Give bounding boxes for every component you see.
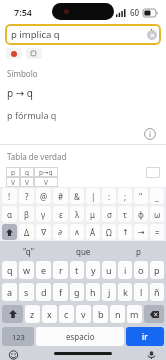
button[interactable]: d [36, 283, 51, 301]
button[interactable]: γ [36, 206, 51, 222]
staticText: _ [155, 191, 159, 202]
staticText: ! [8, 191, 11, 202]
button[interactable]: ∂ [53, 224, 68, 240]
staticText: ε [59, 209, 63, 220]
button[interactable]: a [2, 283, 17, 301]
button[interactable]: Otra fuente [26, 48, 42, 59]
staticText: ir [142, 331, 148, 342]
staticText: = [155, 227, 160, 238]
button[interactable]: ↑ [118, 224, 132, 240]
staticText: p → q [7, 86, 33, 100]
button[interactable]: σ [102, 206, 116, 222]
button[interactable]: t [70, 261, 84, 279]
button[interactable]: & [70, 188, 84, 204]
staticText: & [74, 191, 80, 202]
staticText: u [106, 264, 112, 276]
button[interactable]: u [102, 261, 116, 279]
button[interactable]: → [134, 224, 148, 240]
staticText: ñ [154, 286, 160, 298]
button[interactable]: k [118, 283, 132, 301]
button[interactable]: v [76, 305, 91, 323]
button[interactable]: s [19, 283, 34, 301]
button[interactable]: Dictado por voz [145, 350, 158, 360]
button[interactable]: h [86, 283, 100, 301]
button[interactable]: q [2, 261, 17, 279]
button[interactable]: j [102, 283, 116, 301]
button[interactable]: "q" [0, 243, 56, 259]
button[interactable]: Borrar [144, 305, 164, 323]
button[interactable]: β [19, 206, 34, 222]
button[interactable]: f [53, 283, 68, 301]
button[interactable]: ? [19, 188, 34, 204]
staticText: q [7, 264, 13, 276]
button[interactable]: que [56, 243, 111, 259]
button[interactable]: 123 [2, 327, 34, 346]
button[interactable]: Ω [102, 224, 116, 240]
button[interactable]: espacio [36, 327, 124, 346]
button[interactable]: = [150, 224, 164, 240]
button[interactable]: e [36, 261, 51, 279]
staticText: @ [40, 191, 48, 202]
button[interactable]: o [134, 261, 148, 279]
button[interactable]: ω [150, 206, 164, 222]
button[interactable]: p fórmula q [0, 108, 166, 122]
staticText: ? [25, 191, 29, 202]
staticText: ∂ [58, 228, 63, 237]
button[interactable]: r [53, 261, 68, 279]
button[interactable]: ∧ [70, 224, 84, 240]
staticText: p [154, 264, 160, 276]
button[interactable]: Expandir [146, 167, 160, 178]
button[interactable]: Δ [19, 224, 34, 240]
staticText: y [91, 264, 96, 276]
button[interactable]: # [53, 188, 68, 204]
button[interactable]: m [127, 305, 142, 323]
staticText: j [108, 286, 111, 298]
button[interactable]: x [42, 305, 57, 323]
button[interactable]: Emoji [7, 350, 20, 360]
button[interactable]: Borrar [147, 30, 157, 40]
button[interactable]: Mayúsculas [2, 305, 23, 323]
button[interactable]: ir [126, 327, 164, 346]
button[interactable]: i [118, 261, 132, 279]
button[interactable]: φ [134, 206, 148, 222]
button[interactable]: " [134, 188, 148, 204]
button[interactable]: ñ [150, 283, 164, 301]
button[interactable]: Å [86, 224, 100, 240]
button[interactable]: n [110, 305, 125, 323]
button[interactable]: Información [144, 128, 156, 140]
button[interactable]: p → q [0, 86, 166, 100]
button[interactable]: Buscar en Google [6, 48, 22, 59]
button[interactable]: λ [70, 206, 84, 222]
button[interactable]: ε [53, 206, 68, 222]
button[interactable]: Mayúsculas [2, 224, 17, 240]
button[interactable]: : [102, 188, 116, 204]
button[interactable]: c [59, 305, 74, 323]
button[interactable]: | [86, 188, 100, 204]
button[interactable]: g [70, 283, 84, 301]
button[interactable]: b [93, 305, 108, 323]
staticText: φ [138, 209, 144, 220]
button[interactable]: p [111, 243, 166, 259]
button[interactable]: z [25, 305, 40, 323]
staticText: Símbolo [7, 68, 38, 79]
staticText: p [11, 168, 15, 177]
staticText: b [98, 308, 104, 320]
staticText: γ [41, 209, 46, 220]
button[interactable]: ! [2, 188, 17, 204]
button[interactable]: μ [86, 206, 100, 222]
button[interactable]: p implica q [5, 24, 161, 45]
button[interactable]: τ [118, 206, 132, 222]
button[interactable]: α [2, 206, 17, 222]
button[interactable]: ; [118, 188, 132, 204]
staticText: # [58, 191, 64, 202]
staticText: w [23, 264, 31, 276]
staticText: e [41, 264, 47, 276]
staticText: "q" [23, 246, 34, 257]
button[interactable]: l [134, 283, 148, 301]
button[interactable]: y [86, 261, 100, 279]
button[interactable]: ∇ [36, 224, 51, 240]
button[interactable]: @ [36, 188, 51, 204]
button[interactable]: w [19, 261, 34, 279]
button[interactable]: _ [150, 188, 164, 204]
button[interactable]: p [150, 261, 164, 279]
